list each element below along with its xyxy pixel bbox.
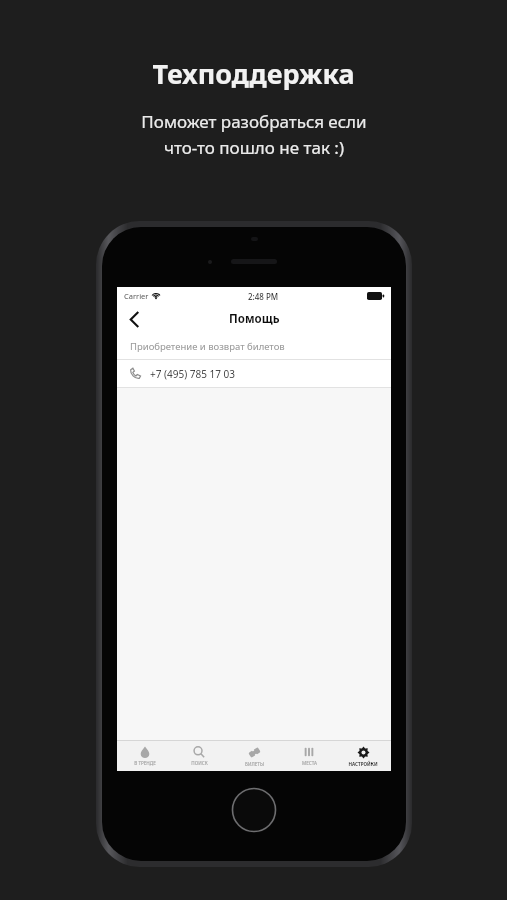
staticText: Помощь — [229, 311, 280, 327]
staticText: НАСТРОЙКИ — [348, 761, 378, 767]
button[interactable]: МЕСТА — [282, 741, 336, 771]
button[interactable]: ПОИСК — [172, 741, 226, 771]
button[interactable]: +7 (495) 785 17 03 — [117, 360, 391, 387]
staticText: В ТРЕНДЕ — [134, 760, 156, 766]
staticText: БИЛЕТЫ — [245, 761, 264, 767]
staticText: МЕСТА — [302, 760, 317, 766]
staticText: Carrier — [124, 291, 149, 301]
staticText: Поможет разобраться если что-то пошло не… — [141, 110, 367, 159]
button[interactable]: Назад — [117, 305, 151, 333]
staticText: Техподдержка — [152, 55, 355, 92]
button[interactable]: БИЛЕТЫ — [227, 741, 281, 771]
button[interactable]: НАСТРОЙКИ — [336, 741, 390, 771]
staticText: 2:48 PM — [248, 291, 279, 302]
button[interactable]: В ТРЕНДЕ — [118, 741, 172, 771]
staticText: ПОИСК — [191, 760, 208, 766]
staticText: +7 (495) 785 17 03 — [150, 367, 236, 381]
staticText: Приобретение и возврат билетов — [130, 340, 285, 353]
